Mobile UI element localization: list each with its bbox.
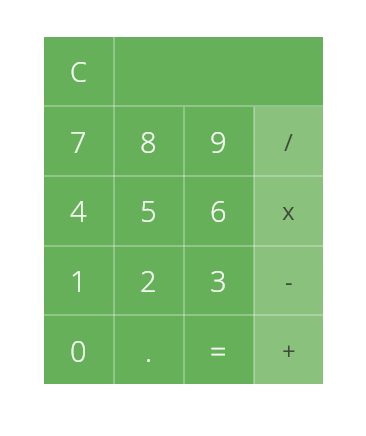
button[interactable]: /	[254, 107, 323, 175]
button[interactable]: 3	[184, 246, 253, 314]
staticText: /	[284, 125, 293, 158]
button[interactable]: 4	[44, 176, 113, 244]
staticText: -	[285, 264, 293, 297]
staticText: 9	[210, 122, 227, 161]
staticText: 7	[70, 122, 87, 161]
button[interactable]: 9	[184, 107, 253, 175]
staticText: 4	[70, 191, 87, 230]
button[interactable]: 6	[184, 176, 253, 244]
button[interactable]: 1	[44, 246, 113, 314]
staticText: 0	[70, 331, 87, 370]
button[interactable]: x	[254, 176, 323, 244]
staticText: C	[70, 53, 87, 90]
staticText: 1	[70, 261, 87, 300]
button[interactable]: 0	[44, 316, 113, 384]
button[interactable]: =	[184, 316, 253, 384]
staticText: 2	[140, 261, 157, 300]
button[interactable]: 2	[114, 246, 183, 314]
staticText: 6	[210, 191, 227, 230]
button[interactable]: .	[114, 316, 183, 384]
staticText: 3	[210, 261, 227, 300]
staticText: +	[282, 334, 296, 367]
button[interactable]: +	[254, 316, 323, 384]
button[interactable]: -	[254, 246, 323, 314]
staticText: 5	[140, 191, 157, 230]
button[interactable]: C	[44, 37, 113, 105]
button[interactable]: 5	[114, 176, 183, 244]
staticText: =	[210, 331, 227, 370]
button[interactable]: 8	[114, 107, 183, 175]
staticText: .	[145, 331, 153, 370]
staticText: 8	[140, 122, 157, 161]
staticText: x	[282, 194, 295, 227]
button[interactable]: 7	[44, 107, 113, 175]
